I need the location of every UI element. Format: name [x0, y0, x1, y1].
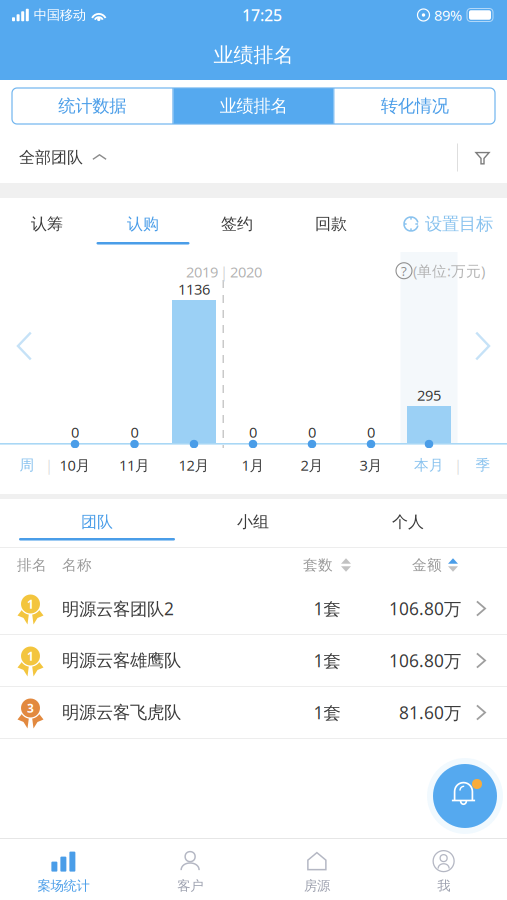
staticText: 17:25 — [242, 4, 282, 26]
staticText: | — [454, 455, 462, 475]
button[interactable]: 转化情况 — [335, 88, 495, 124]
staticText: 106.80万 — [389, 649, 461, 672]
button[interactable]: 个人 — [330, 499, 486, 545]
staticText: 1136 — [178, 279, 210, 299]
staticText: 89% — [434, 5, 462, 25]
staticText: 2020 — [230, 262, 262, 281]
button[interactable]: 周 — [0, 448, 55, 482]
staticText: 团队 — [81, 512, 113, 532]
staticText: 签约 — [221, 214, 253, 234]
staticText: | — [220, 262, 228, 281]
staticText: 认购 — [127, 214, 159, 234]
button[interactable]: 案场统计 — [0, 839, 127, 900]
staticText: 0 — [249, 422, 257, 442]
staticText: 客户 — [177, 878, 203, 894]
button[interactable]: 1 — [0, 583, 507, 635]
button[interactable]: 1月 — [225, 448, 281, 482]
button[interactable]: 本月 — [401, 448, 457, 482]
staticText: 名称 — [62, 556, 92, 574]
staticText: 小组 — [237, 512, 269, 532]
staticText: 3 — [27, 700, 34, 716]
staticText: 明源云客团队2 — [62, 597, 174, 620]
button[interactable]: 12月 — [166, 448, 222, 482]
button[interactable]: 全部团队 — [0, 132, 117, 183]
staticText: 295 — [417, 385, 441, 405]
staticText: 案场统计 — [37, 878, 89, 894]
staticText: 金额 — [412, 556, 442, 574]
staticText: 2019 — [186, 262, 218, 281]
button[interactable]: 团队 — [19, 499, 175, 545]
staticText: 0 — [367, 422, 375, 442]
staticText: 统计数据 — [58, 95, 126, 117]
button[interactable]: 客户 — [127, 839, 254, 900]
staticText: 业绩排名 — [219, 95, 287, 117]
button[interactable]: 3 — [0, 687, 507, 739]
staticText: 明源云客飞虎队 — [62, 702, 181, 723]
button[interactable]: 认筹 — [0, 198, 94, 250]
staticText: 本月 — [414, 456, 444, 474]
staticText: 1套 — [313, 649, 340, 672]
button[interactable]: 筛选 — [458, 132, 507, 183]
button[interactable]: 签约 — [190, 198, 284, 250]
button[interactable]: 小组 — [175, 499, 331, 545]
staticText: 认筹 — [31, 214, 63, 234]
staticText: (单位:万元) — [413, 261, 485, 280]
staticText: 1套 — [313, 597, 340, 620]
staticText: 1套 — [313, 701, 340, 724]
staticText: 0 — [130, 422, 138, 442]
staticText: 10月 — [59, 455, 90, 475]
staticText: 周 — [19, 456, 34, 474]
button[interactable]: 10月 — [47, 448, 103, 482]
button[interactable]: 2月 — [284, 448, 340, 482]
button[interactable]: 业绩排名 — [173, 88, 334, 124]
staticText: 设置目标 — [425, 213, 493, 235]
staticText: 排名 — [17, 556, 47, 574]
staticText: 0 — [308, 422, 316, 442]
button[interactable]: 认购 — [96, 198, 190, 250]
staticText: 1 — [27, 648, 34, 664]
staticText: 房源 — [304, 878, 330, 894]
staticText: 全部团队 — [19, 148, 83, 167]
staticText: 个人 — [392, 512, 424, 532]
staticText: 回款 — [315, 214, 347, 234]
staticText: 明源云客雄鹰队 — [62, 650, 181, 671]
staticText: 季 — [475, 456, 490, 474]
button[interactable]: 季 — [455, 448, 507, 482]
staticText: 106.80万 — [389, 597, 461, 620]
staticText: 11月 — [119, 455, 150, 475]
button[interactable]: 房源 — [253, 839, 380, 900]
staticText: 0 — [71, 422, 79, 442]
staticText: 1月 — [241, 455, 264, 475]
staticText: ? — [401, 262, 407, 280]
staticText: 套数 — [303, 556, 333, 574]
staticText: 12月 — [178, 455, 209, 475]
button[interactable]: 1 — [0, 635, 507, 687]
staticText: | — [45, 455, 53, 475]
staticText: 2月 — [300, 455, 323, 475]
button[interactable]: 通知 — [427, 758, 503, 834]
button[interactable]: 回款 — [284, 198, 378, 250]
button[interactable]: 统计数据 — [12, 88, 172, 124]
staticText: 我 — [437, 878, 450, 894]
button[interactable]: 设置目标 — [391, 198, 505, 250]
staticText: 3月 — [359, 455, 382, 475]
button[interactable]: 我 — [380, 839, 507, 900]
staticText: 1 — [27, 596, 34, 612]
staticText: 中国移动 — [34, 7, 86, 23]
staticText: 转化情况 — [381, 95, 449, 117]
staticText: 81.60万 — [399, 701, 461, 724]
button[interactable]: 11月 — [106, 448, 162, 482]
staticText: 业绩排名 — [213, 43, 293, 67]
button[interactable]: 3月 — [343, 448, 399, 482]
